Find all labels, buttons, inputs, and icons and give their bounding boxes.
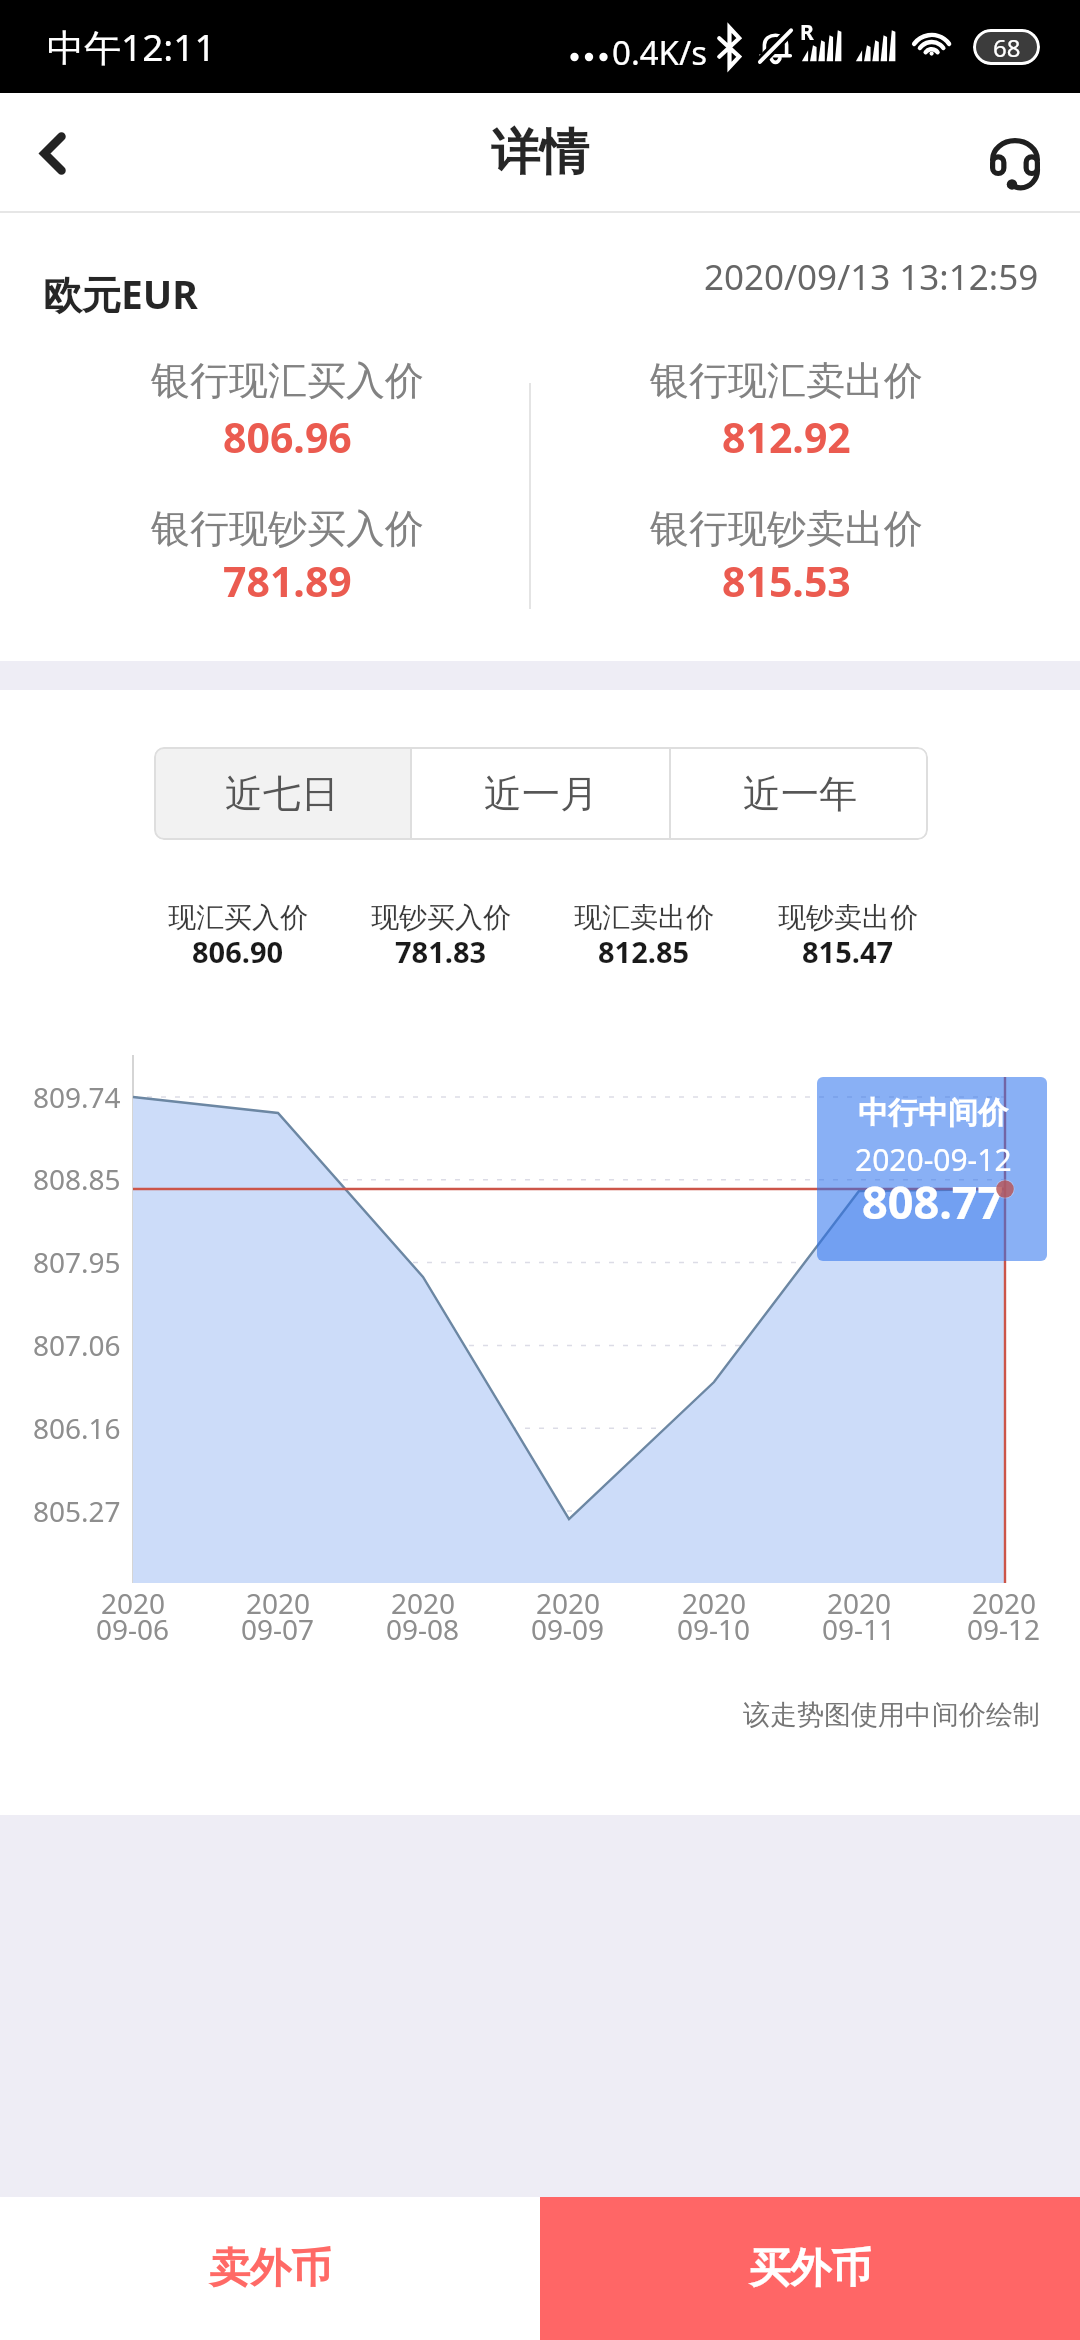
staticText: 09-09 [531,1610,605,1648]
staticText: 806.96 [223,409,352,465]
button[interactable]: 近一月 [412,747,669,840]
staticText: 现钞卖出价 [778,900,918,935]
staticText: 卖外币 [209,2243,332,2295]
staticText: 808.77 [862,1171,1004,1232]
staticText: 该走势图使用中间价绘制 [743,1698,1040,1732]
staticText: 中午12:11 [47,21,216,72]
button[interactable]: Back [0,93,110,213]
staticText: 807.06 [33,1326,121,1364]
staticText: 2020 [391,1584,456,1622]
staticText: 805.27 [33,1492,121,1530]
staticText: 2020 [682,1584,747,1622]
staticText: 2020 [827,1584,892,1622]
staticText: 银行现钞买入价 [151,504,424,553]
staticText: 806.90 [192,932,284,971]
staticText: 买外币 [749,2243,872,2295]
staticText: 2020 [246,1584,311,1622]
staticText: 809.74 [33,1078,121,1116]
staticText: 09-11 [822,1610,896,1648]
staticText: 812.85 [598,932,690,971]
staticText: 2020-09-12 [855,1139,1012,1180]
staticText: 812.92 [722,409,851,465]
staticText: 银行现汇卖出价 [650,356,923,405]
button[interactable]: 近一年 [671,747,928,840]
staticText: 现汇卖出价 [574,900,714,935]
staticText: 09-08 [386,1610,460,1648]
staticText: 09-12 [967,1610,1041,1648]
staticText: 815.47 [802,932,894,971]
staticText: 近一年 [743,770,857,818]
button[interactable]: 近七日 [154,747,410,840]
staticText: 09-06 [96,1610,170,1648]
staticText: 银行现钞卖出价 [650,504,923,553]
staticText: 807.95 [33,1243,121,1281]
staticText: 中行中间价 [858,1094,1008,1132]
button[interactable]: 买外币 [540,2197,1080,2340]
staticText: 2020 [536,1584,601,1622]
staticText: 2020 [972,1584,1037,1622]
staticText: 815.53 [722,553,851,609]
staticText: 2020/09/13 13:12:59 [704,253,1039,301]
staticText: 09-07 [241,1610,315,1648]
staticText: 806.16 [33,1409,121,1447]
staticText: 银行现汇买入价 [151,356,424,405]
staticText: 近七日 [225,770,339,818]
staticText: 详情 [491,122,589,184]
staticText: 现汇买入价 [168,900,308,935]
button[interactable]: Customer service [970,93,1080,213]
staticText: 2020 [101,1584,166,1622]
staticText: 68 [993,31,1021,64]
staticText: 现钞买入价 [371,900,511,935]
staticText: R [800,18,814,47]
staticText: 近一月 [484,770,598,818]
staticText: 781.83 [395,932,487,971]
staticText: 09-10 [677,1610,751,1648]
staticText: 781.89 [223,553,352,609]
staticText: 808.85 [33,1160,121,1198]
staticText: 0.4K/s [612,30,708,75]
button[interactable]: 卖外币 [0,2197,540,2340]
staticText: 欧元EUR [43,267,198,320]
